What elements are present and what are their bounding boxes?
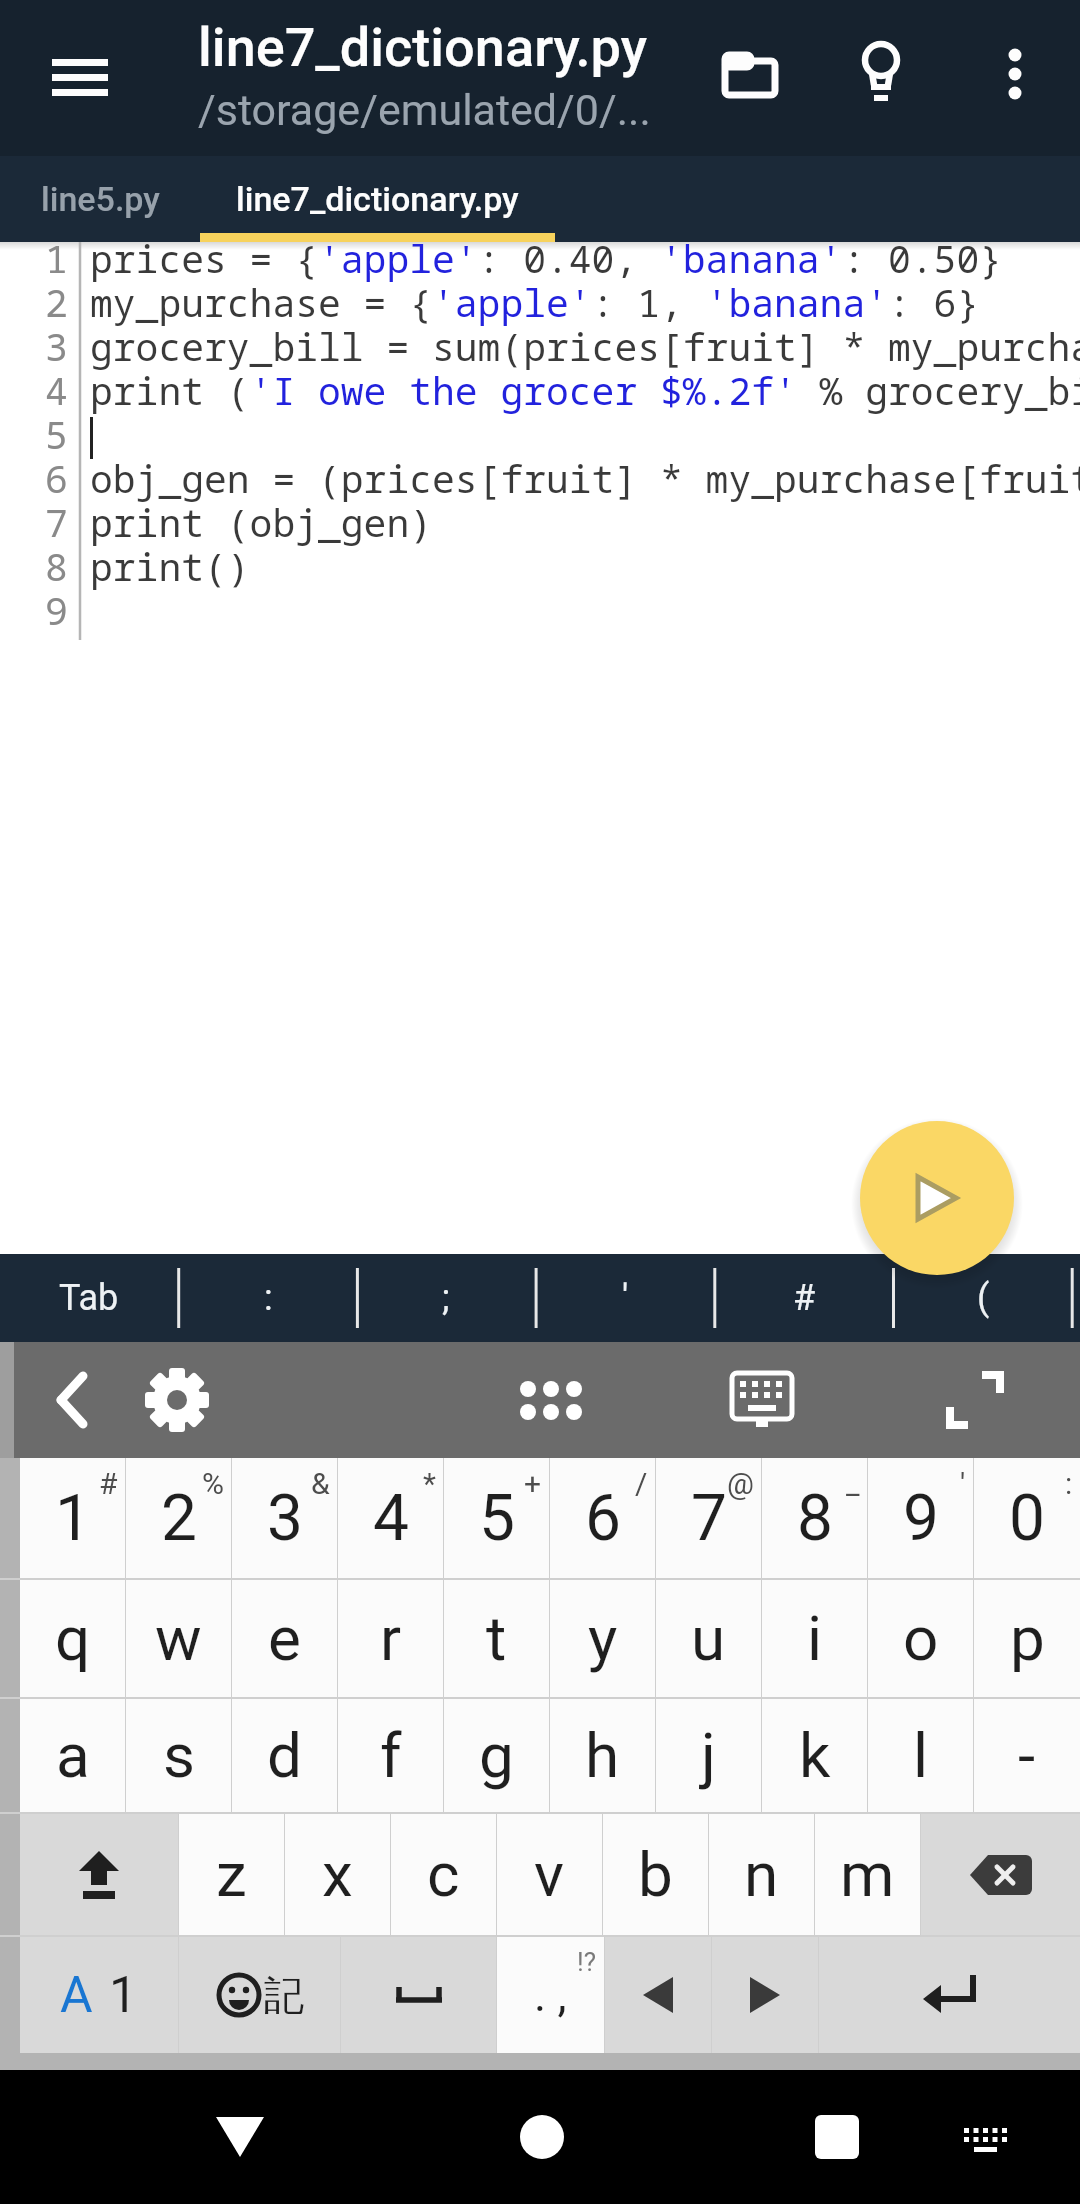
button[interactable]: g	[444, 1699, 549, 1812]
button[interactable]: w	[126, 1580, 231, 1697]
staticText: print (obj_gen)	[90, 496, 433, 540]
button[interactable]	[505, 1360, 597, 1440]
button[interactable]: d	[232, 1699, 337, 1812]
button[interactable]: v	[497, 1814, 602, 1935]
button[interactable]	[836, 30, 926, 115]
button[interactable]	[860, 1121, 1014, 1275]
button[interactable]: y	[550, 1580, 655, 1697]
button[interactable]: '	[536, 1254, 714, 1342]
button[interactable]	[36, 44, 124, 104]
staticText: 9	[903, 1481, 939, 1556]
button[interactable]: a	[20, 1699, 125, 1812]
staticText: 8	[797, 1481, 833, 1556]
button[interactable]: o	[868, 1580, 973, 1697]
button[interactable]	[487, 2095, 597, 2179]
button[interactable]	[782, 2095, 892, 2179]
button[interactable]: c	[391, 1814, 496, 1935]
staticText: 2	[161, 1481, 197, 1556]
staticText: grocery_bill = sum(prices[fruit] * my_pu…	[90, 320, 1080, 364]
button[interactable]: k	[762, 1699, 867, 1812]
button[interactable]	[935, 2105, 1035, 2175]
button[interactable]	[705, 35, 795, 115]
button[interactable]: . ,	[497, 1937, 604, 2053]
button[interactable]: q	[20, 1580, 125, 1697]
button[interactable]: 1	[20, 1458, 125, 1578]
button[interactable]: l	[868, 1699, 973, 1812]
button[interactable]: f	[338, 1699, 443, 1812]
button[interactable]: 0	[974, 1458, 1080, 1578]
button[interactable]	[20, 1814, 178, 1935]
staticText: 5	[45, 408, 68, 452]
button[interactable]: i	[762, 1580, 867, 1697]
staticText: :	[1065, 1466, 1073, 1501]
button[interactable]: ;	[357, 1254, 535, 1342]
staticText: 5	[479, 1481, 515, 1556]
button[interactable]	[135, 1360, 219, 1440]
button[interactable]: 5	[444, 1458, 549, 1578]
button[interactable]: j	[656, 1699, 761, 1812]
staticText: prices = {'apple': 0.40, 'banana': 0.50}	[90, 232, 1003, 276]
button[interactable]: 2	[126, 1458, 231, 1578]
button[interactable]	[718, 1360, 806, 1440]
button[interactable]: b	[603, 1814, 708, 1935]
button[interactable]: u	[656, 1580, 761, 1697]
button[interactable]: 6	[550, 1458, 655, 1578]
staticText: 1	[45, 232, 68, 276]
staticText: 2	[45, 276, 68, 320]
staticText: Tab	[59, 1277, 119, 1319]
button[interactable]: p	[974, 1580, 1080, 1697]
button[interactable]: (	[894, 1254, 1072, 1342]
staticText: 6	[45, 452, 68, 496]
staticText: v	[534, 1838, 565, 1911]
staticText: /	[635, 1466, 648, 1501]
button[interactable]: 9	[868, 1458, 973, 1578]
button[interactable]: z	[179, 1814, 284, 1935]
button[interactable]: line5.py	[0, 156, 200, 242]
staticText: -	[1018, 1719, 1036, 1792]
staticText: :	[264, 1277, 273, 1319]
button[interactable]	[605, 1937, 711, 2053]
button[interactable]: #	[715, 1254, 893, 1342]
button[interactable]	[341, 1937, 496, 2053]
button[interactable]: m	[815, 1814, 920, 1935]
staticText: 1	[109, 1966, 138, 2025]
button[interactable]: A	[20, 1937, 178, 2053]
button[interactable]: e	[232, 1580, 337, 1697]
button[interactable]: n	[709, 1814, 814, 1935]
button[interactable]: h	[550, 1699, 655, 1812]
button[interactable]: -	[974, 1699, 1080, 1812]
button[interactable]	[185, 2095, 295, 2179]
staticText: %	[202, 1466, 224, 1501]
staticText: &	[311, 1466, 330, 1501]
button[interactable]	[975, 35, 1055, 115]
button[interactable]: 記	[179, 1937, 340, 2053]
button[interactable]	[930, 1360, 1020, 1440]
staticText: line7_dictionary.py	[198, 16, 647, 79]
staticText: obj_gen = (prices[fruit] * my_purchase[f…	[90, 452, 1080, 496]
button[interactable]: Tab	[0, 1254, 178, 1342]
button[interactable]: 7	[656, 1458, 761, 1578]
staticText: 記	[264, 1970, 304, 2020]
staticText: h	[585, 1719, 620, 1792]
staticText: r	[380, 1602, 402, 1675]
staticText: c	[427, 1838, 460, 1911]
button[interactable]	[30, 1360, 114, 1440]
button[interactable]: line7_dictionary.py	[200, 156, 555, 242]
button[interactable]	[921, 1814, 1080, 1935]
button[interactable]: :	[179, 1254, 357, 1342]
staticText: #	[99, 1466, 118, 1501]
button[interactable]: 8	[762, 1458, 867, 1578]
staticText: ;	[442, 1277, 450, 1319]
staticText: z	[216, 1838, 247, 1911]
button[interactable]: x	[285, 1814, 390, 1935]
button[interactable]	[712, 1937, 818, 2053]
staticText: +	[524, 1466, 542, 1501]
button[interactable]	[819, 1937, 1080, 2053]
button[interactable]: t	[444, 1580, 549, 1697]
button[interactable]: 3	[232, 1458, 337, 1578]
staticText: . ,	[534, 1968, 567, 2022]
button[interactable]: s	[126, 1699, 231, 1812]
staticText: A	[60, 1966, 93, 2025]
button[interactable]: r	[338, 1580, 443, 1697]
button[interactable]: 4	[338, 1458, 443, 1578]
